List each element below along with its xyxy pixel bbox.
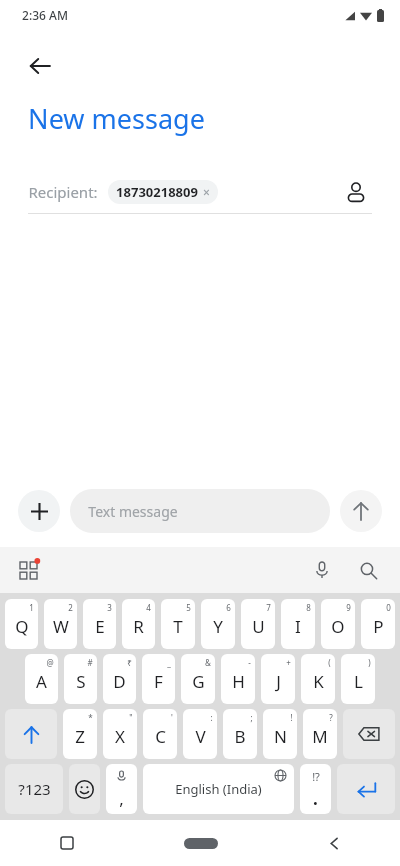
button[interactable]: 5 (161, 599, 195, 649)
button[interactable]: Text message (70, 489, 330, 533)
button[interactable]: 1 (5, 599, 38, 649)
staticText: !? (312, 769, 320, 784)
button[interactable]: Choose contact (340, 176, 372, 208)
staticText: 7 (266, 602, 271, 613)
staticText: 9 (346, 602, 351, 613)
staticText: # (87, 657, 93, 668)
button[interactable]: Voice input (308, 556, 336, 584)
staticText: New message (28, 100, 205, 137)
staticText: : (210, 712, 213, 723)
staticText: S (76, 670, 86, 693)
staticText: ?123 (18, 779, 51, 799)
button[interactable]: Recents (49, 825, 85, 861)
staticText: @ (46, 657, 54, 668)
button[interactable]: : (183, 709, 217, 759)
button[interactable]: ) (341, 654, 375, 704)
button[interactable]: Space (143, 764, 294, 814)
staticText: ? (329, 712, 333, 723)
staticText: U (252, 615, 265, 638)
staticText: O (331, 615, 345, 638)
button[interactable]: 4 (122, 599, 155, 649)
button[interactable]: Send (340, 490, 382, 532)
staticText: , (119, 787, 124, 810)
button[interactable]: 18730218809 (108, 180, 218, 204)
staticText: ' (171, 712, 173, 723)
button[interactable]: + (261, 654, 295, 704)
button[interactable]: & (181, 654, 215, 704)
button[interactable]: ! (263, 709, 297, 759)
staticText: R (133, 615, 144, 638)
staticText: K (313, 670, 324, 693)
button[interactable]: Back (18, 44, 62, 88)
staticText: 2 (68, 602, 73, 613)
button[interactable]: Keyboard toolbar (12, 554, 44, 586)
button[interactable]: 2 (44, 599, 77, 649)
button[interactable]: Search (354, 556, 382, 584)
staticText: English (India) (175, 780, 262, 798)
staticText: E (95, 615, 105, 638)
staticText: M (312, 725, 328, 748)
staticText: F (154, 670, 163, 693)
button[interactable]: Home (177, 828, 225, 858)
staticText: B (234, 725, 246, 748)
staticText: Z (75, 725, 85, 748)
staticText: Q (15, 615, 29, 638)
staticText: - (248, 657, 251, 668)
button[interactable]: ₹ (103, 654, 136, 704)
staticText: I (295, 615, 301, 638)
button[interactable]: 8 (281, 599, 315, 649)
staticText: A (36, 670, 47, 693)
button[interactable]: # (64, 654, 97, 704)
staticText: 5 (186, 602, 191, 613)
button[interactable]: 0 (361, 599, 395, 649)
button[interactable]: Backspace (343, 709, 395, 759)
button[interactable]: 7 (241, 599, 275, 649)
staticText: + (286, 657, 291, 668)
button[interactable]: 6 (201, 599, 235, 649)
staticText: 1 (29, 602, 34, 613)
button[interactable]: * (63, 709, 97, 759)
staticText: 0 (386, 602, 391, 613)
button[interactable]: " (103, 709, 137, 759)
button[interactable]: Shift (5, 709, 57, 759)
staticText: H (232, 670, 245, 693)
staticText: ! (290, 712, 293, 723)
staticText: " (129, 712, 133, 723)
staticText: Text message (88, 502, 178, 521)
staticText: _ (167, 657, 171, 668)
button[interactable]: Add attachment (18, 490, 60, 532)
staticText: Recipient: (28, 182, 98, 202)
button[interactable]: 3 (83, 599, 116, 649)
button[interactable]: ' (143, 709, 177, 759)
button[interactable]: @ (25, 654, 58, 704)
button[interactable]: Emoji (69, 764, 100, 814)
button[interactable]: Symbols (5, 764, 63, 814)
staticText: T (173, 615, 183, 638)
button[interactable]: _ (142, 654, 175, 704)
staticText: 6 (226, 602, 231, 613)
staticText: 18730218809 (116, 183, 198, 201)
staticText: 2:36 AM (22, 7, 68, 23)
staticText: J (276, 670, 281, 693)
staticText: X (115, 725, 125, 748)
staticText: N (274, 725, 287, 748)
button[interactable]: - (221, 654, 255, 704)
button[interactable]: ; (223, 709, 257, 759)
staticText: ) (368, 657, 371, 668)
staticText: D (113, 670, 126, 693)
staticText: * (88, 712, 93, 723)
button[interactable]: Comma (106, 764, 137, 814)
button[interactable]: ( (301, 654, 335, 704)
staticText: ₹ (127, 657, 132, 668)
button[interactable]: Period (300, 764, 331, 814)
staticText: P (373, 615, 384, 638)
staticText: V (195, 725, 206, 748)
button[interactable]: Enter (337, 764, 395, 814)
staticText: 3 (107, 602, 112, 613)
button[interactable]: 9 (321, 599, 355, 649)
button[interactable]: Back (316, 825, 352, 861)
staticText: ( (328, 657, 331, 668)
button[interactable]: ? (303, 709, 337, 759)
staticText: C (155, 725, 166, 748)
staticText: 4 (146, 602, 151, 613)
